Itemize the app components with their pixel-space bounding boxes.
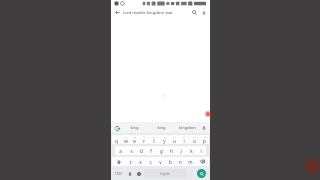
staticText: lord mobile kingdom war: [123, 10, 173, 16]
button[interactable]: 2: [121, 135, 130, 144]
button[interactable]: lord mobile kingdom war: [122, 7, 190, 18]
staticText: b: [169, 159, 172, 165]
button[interactable]: kingdom: [174, 122, 200, 133]
button[interactable]: Shift: [112, 157, 125, 166]
button[interactable]: d: [136, 146, 146, 155]
staticText: 6: [164, 135, 166, 138]
staticText: u: [173, 138, 176, 144]
button[interactable]: x: [135, 157, 145, 166]
staticText: i: [183, 138, 185, 144]
button[interactable]: 4: [139, 135, 149, 144]
staticText: f: [150, 148, 152, 154]
button[interactable]: 3: [130, 135, 139, 144]
staticText: t: [153, 138, 155, 144]
button[interactable]: king: [121, 122, 148, 133]
button[interactable]: c: [145, 157, 155, 166]
staticText: 5: [153, 135, 155, 138]
staticText: .: [190, 171, 192, 176]
staticText: 7: [174, 135, 176, 138]
button[interactable]: b: [165, 157, 175, 166]
button[interactable]: Voice typing: [125, 168, 134, 179]
staticText: a: [119, 148, 122, 154]
staticText: q: [115, 138, 118, 144]
button[interactable]: k: [186, 146, 196, 155]
button[interactable]: 7: [169, 135, 179, 144]
button[interactable]: Symbols: [112, 168, 125, 179]
button[interactable]: Voice input: [200, 124, 208, 132]
staticText: kingdom: [179, 125, 196, 130]
staticText: m: [188, 159, 193, 165]
staticText: c: [149, 159, 152, 165]
staticText: 4: [143, 135, 145, 138]
staticText: e: [133, 138, 136, 144]
staticText: English: [160, 172, 170, 176]
staticText: j: [180, 148, 182, 154]
button[interactable]: l: [196, 146, 206, 155]
button[interactable]: Back: [113, 8, 122, 17]
button[interactable]: English: [144, 169, 186, 178]
staticText: p: [203, 138, 206, 144]
staticText: king: [157, 125, 166, 130]
button[interactable]: king: [148, 122, 174, 133]
staticText: n: [179, 159, 182, 165]
staticText: z: [129, 159, 132, 165]
button[interactable]: j: [176, 146, 186, 155]
button[interactable]: f: [146, 146, 156, 155]
staticText: g: [160, 148, 163, 154]
button[interactable]: 0: [199, 135, 209, 144]
staticText: 2: [125, 135, 127, 138]
staticText: h: [170, 148, 173, 154]
button[interactable]: Voice search: [199, 8, 208, 17]
button[interactable]: z: [125, 157, 135, 166]
button[interactable]: 5: [149, 135, 159, 144]
staticText: s: [130, 148, 133, 154]
button[interactable]: 9: [189, 135, 199, 144]
button[interactable]: m: [185, 157, 195, 166]
staticText: l: [200, 148, 202, 154]
staticText: 3: [134, 135, 136, 138]
button[interactable]: h: [166, 146, 176, 155]
button[interactable]: 1: [112, 135, 121, 144]
staticText: ?123: [115, 172, 122, 176]
staticText: 8: [183, 135, 185, 138]
staticText: k: [190, 148, 193, 154]
staticText: y: [163, 138, 166, 144]
staticText: 0: [204, 135, 206, 138]
button[interactable]: 8: [179, 135, 189, 144]
button[interactable]: a: [115, 146, 126, 155]
staticText: king: [130, 125, 139, 130]
staticText: w: [124, 138, 128, 144]
button[interactable]: Search: [190, 8, 199, 17]
button[interactable]: Google search: [113, 124, 121, 132]
button[interactable]: s: [126, 146, 136, 155]
button[interactable]: Change language: [134, 168, 143, 179]
button[interactable]: n: [175, 157, 185, 166]
button[interactable]: Search: [194, 168, 209, 179]
button[interactable]: g: [156, 146, 166, 155]
staticText: v: [159, 159, 162, 165]
staticText: r: [143, 138, 145, 144]
button[interactable]: v: [155, 157, 165, 166]
button[interactable]: 6: [159, 135, 169, 144]
staticText: 9: [194, 135, 196, 138]
staticText: d: [140, 148, 143, 154]
staticText: x: [139, 159, 142, 165]
staticText: 1: [116, 135, 118, 138]
staticText: o: [193, 138, 196, 144]
button[interactable]: Backspace: [195, 157, 209, 166]
